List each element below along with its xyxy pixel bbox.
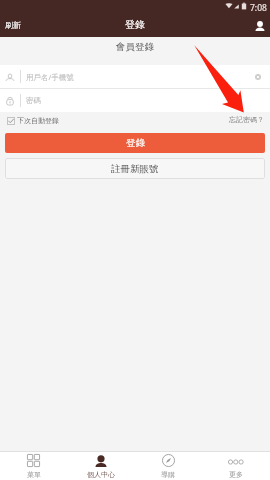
staticText: 會員登錄 [116, 41, 154, 53]
staticText: 導購 [161, 470, 175, 479]
button[interactable]: 個人中心 [67, 452, 134, 480]
staticText: 忘記密碼？ [229, 115, 264, 124]
button[interactable]: 更多 [202, 452, 270, 480]
staticText: 登錄 [126, 137, 145, 149]
button[interactable]: 菜單 [0, 452, 67, 480]
staticText: 個人中心 [87, 470, 115, 479]
button[interactable]: 忘記密碼？ [229, 115, 264, 124]
staticText: 菜單 [27, 470, 41, 479]
staticText: 刷新 [5, 20, 21, 30]
button[interactable]: 刷新 [0, 17, 31, 36]
staticText: 密碼 [26, 96, 41, 105]
staticText: 用戶名/手機號 [26, 72, 74, 82]
button[interactable]: 導購 [134, 452, 202, 480]
staticText: 7:08 [250, 2, 267, 14]
button[interactable]: 登錄 [5, 133, 265, 153]
button[interactable]: Clear [251, 70, 265, 84]
button[interactable]: 註冊新賬號 [5, 158, 265, 179]
staticText: 下次自動登錄 [17, 116, 59, 125]
button[interactable]: 下次自動登錄 [7, 116, 59, 125]
staticText: 註冊新賬號 [111, 163, 159, 175]
staticText: 登錄 [125, 18, 145, 31]
staticText: 更多 [229, 470, 243, 479]
button[interactable]: Account [252, 17, 270, 35]
